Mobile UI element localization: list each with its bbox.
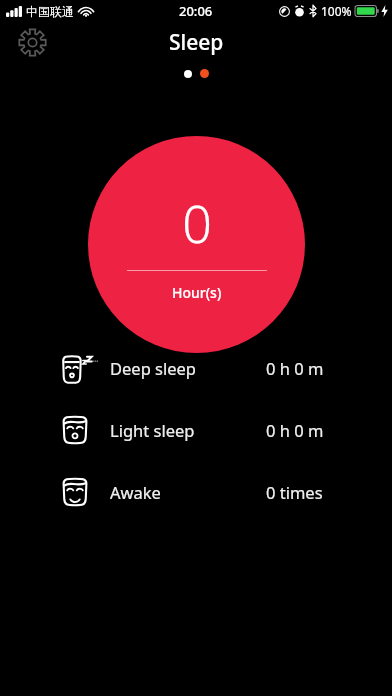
staticText: 中国联通 bbox=[26, 4, 74, 19]
staticText: 100% bbox=[321, 3, 352, 19]
staticText: Sleep bbox=[169, 28, 224, 57]
staticText: 0 times bbox=[266, 481, 323, 503]
button[interactable] bbox=[184, 70, 192, 78]
staticText: 20:06 bbox=[179, 2, 213, 20]
button[interactable]: Deep sleep bbox=[0, 345, 392, 391]
staticText: 0 bbox=[182, 187, 212, 258]
staticText: Light sleep bbox=[110, 419, 195, 441]
staticText: Deep sleep bbox=[110, 357, 197, 379]
button[interactable]: 0 bbox=[88, 136, 305, 353]
staticText: Awake bbox=[110, 481, 161, 503]
button[interactable]: Settings bbox=[12, 22, 52, 62]
button[interactable]: Awake bbox=[0, 469, 392, 515]
staticText: 0 h 0 m bbox=[266, 357, 324, 379]
button[interactable]: Light sleep bbox=[0, 407, 392, 453]
staticText: 0 h 0 m bbox=[266, 419, 324, 441]
staticText: Hour(s) bbox=[172, 283, 222, 302]
button[interactable] bbox=[200, 69, 209, 78]
